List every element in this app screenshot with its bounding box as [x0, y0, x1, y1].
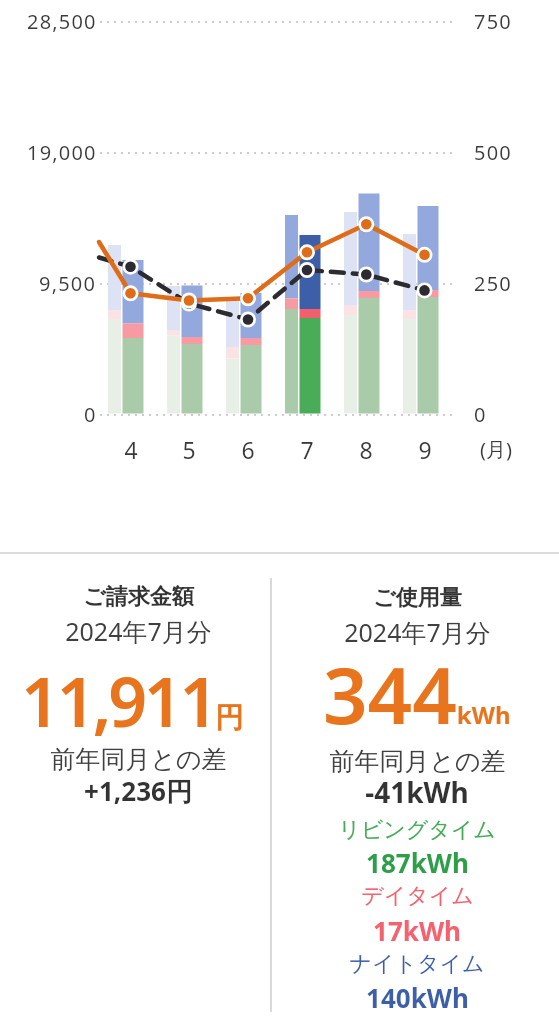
staticText: 344kWh: [323, 641, 511, 731]
staticText: 前年同月との差: [50, 744, 227, 775]
staticText: 28,500: [27, 8, 97, 35]
staticText: 17kWh: [373, 913, 461, 948]
staticText: +1,236円: [84, 773, 192, 809]
staticText: デイタイム: [361, 882, 474, 910]
staticText: -41kWh: [365, 773, 469, 811]
staticText: 750: [474, 8, 512, 35]
staticText: 187kWh: [366, 845, 469, 880]
staticText: 前年同月との差: [329, 746, 506, 777]
staticText: 9: [418, 434, 432, 464]
staticText: 140kWh: [366, 980, 469, 1015]
staticText: 11,911円: [21, 654, 244, 744]
staticText: 9,500: [39, 270, 97, 297]
staticText: 250: [474, 270, 512, 297]
staticText: 500: [474, 139, 512, 166]
staticText: ご使用量: [373, 584, 462, 612]
staticText: 2024年7月分: [65, 614, 212, 648]
staticText: ナイトタイム: [349, 950, 485, 978]
button[interactable]: 11,911円: [2, 654, 262, 744]
staticText: 0: [474, 401, 487, 428]
staticText: (月): [480, 436, 512, 463]
staticText: 8: [359, 434, 373, 464]
staticText: 2024年7月分: [344, 615, 491, 649]
staticText: リビングタイム: [338, 816, 496, 844]
staticText: 19,000: [27, 139, 97, 166]
staticText: 0: [84, 401, 97, 428]
staticText: 6: [241, 434, 255, 464]
staticText: 7: [300, 434, 314, 464]
staticText: 4: [124, 434, 138, 464]
staticText: ご請求金額: [83, 583, 194, 611]
staticText: 5: [182, 434, 196, 464]
button[interactable]: 344kWh: [287, 641, 547, 731]
